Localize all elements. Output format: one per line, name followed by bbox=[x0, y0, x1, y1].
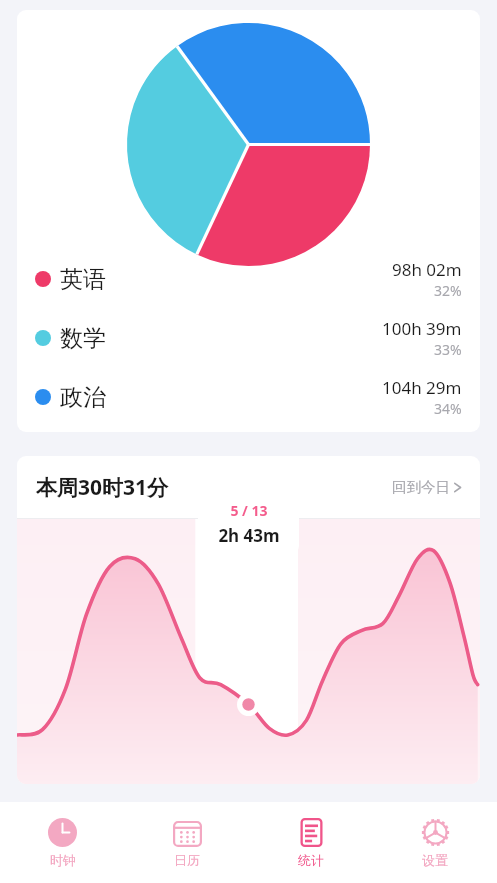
staticText: 政治 bbox=[60, 383, 106, 412]
staticText: 34% bbox=[434, 399, 462, 418]
staticText: 98h 02m bbox=[392, 258, 462, 281]
staticText: 104h 29m bbox=[382, 376, 462, 399]
button[interactable]: 统计 bbox=[249, 802, 373, 883]
staticText: 100h 39m bbox=[382, 317, 462, 340]
button[interactable]: 时钟 bbox=[0, 802, 125, 883]
staticText: 时钟 bbox=[50, 852, 76, 868]
button[interactable]: 回到今日 bbox=[392, 478, 463, 496]
staticText: 本周30时31分 bbox=[36, 473, 169, 502]
staticText: 英语 bbox=[60, 265, 106, 294]
staticText: 33% bbox=[434, 340, 462, 359]
button[interactable]: 5 / 13 bbox=[198, 493, 299, 556]
button[interactable]: 日历 bbox=[125, 802, 249, 883]
staticText: 回到今日 bbox=[392, 478, 450, 496]
staticText: 统计 bbox=[298, 852, 324, 868]
staticText: 5 / 13 bbox=[230, 501, 268, 520]
button[interactable]: 政治 bbox=[35, 376, 462, 418]
button[interactable]: 英语 bbox=[35, 258, 462, 300]
staticText: 日历 bbox=[174, 852, 200, 868]
staticText: 数学 bbox=[60, 324, 106, 353]
button[interactable]: 数学 bbox=[35, 317, 462, 359]
staticText: 32% bbox=[434, 281, 462, 300]
staticText: 设置 bbox=[422, 852, 448, 868]
button[interactable]: 设置 bbox=[373, 802, 497, 883]
staticText: 2h 43m bbox=[218, 524, 280, 547]
